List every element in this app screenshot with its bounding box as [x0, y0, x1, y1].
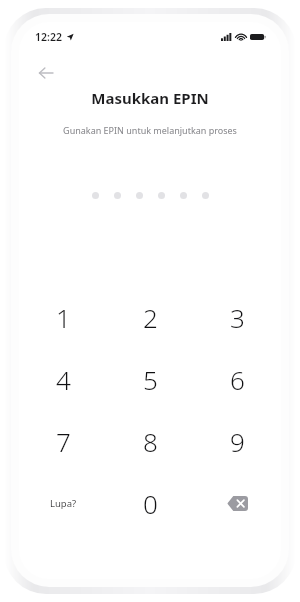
staticText: 9: [230, 424, 245, 459]
staticText: 0: [143, 486, 158, 521]
button[interactable]: 7: [19, 410, 107, 472]
staticText: 3: [230, 300, 245, 335]
staticText: 6: [230, 362, 245, 397]
staticText: 2: [143, 300, 158, 335]
button[interactable]: Back: [27, 54, 65, 92]
staticText: Gunakan EPIN untuk melanjutkan proses: [63, 124, 237, 136]
button[interactable]: 2: [107, 286, 194, 348]
staticText: 12:22: [35, 30, 62, 44]
button[interactable]: 1: [19, 286, 107, 348]
staticText: 8: [143, 424, 158, 459]
button[interactable]: 0: [107, 472, 194, 534]
staticText: 4: [56, 362, 71, 397]
button[interactable]: 4: [19, 348, 107, 410]
staticText: Lupa?: [50, 497, 77, 510]
button[interactable]: 5: [107, 348, 194, 410]
button[interactable]: 8: [107, 410, 194, 472]
button[interactable]: Backspace: [194, 472, 281, 534]
staticText: 7: [56, 424, 71, 459]
staticText: 1: [56, 300, 71, 335]
staticText: Masukkan EPIN: [91, 88, 209, 108]
button[interactable]: 6: [194, 348, 281, 410]
staticText: 5: [143, 362, 158, 397]
button[interactable]: 3: [194, 286, 281, 348]
button[interactable]: 9: [194, 410, 281, 472]
button[interactable]: Lupa?: [19, 472, 107, 534]
